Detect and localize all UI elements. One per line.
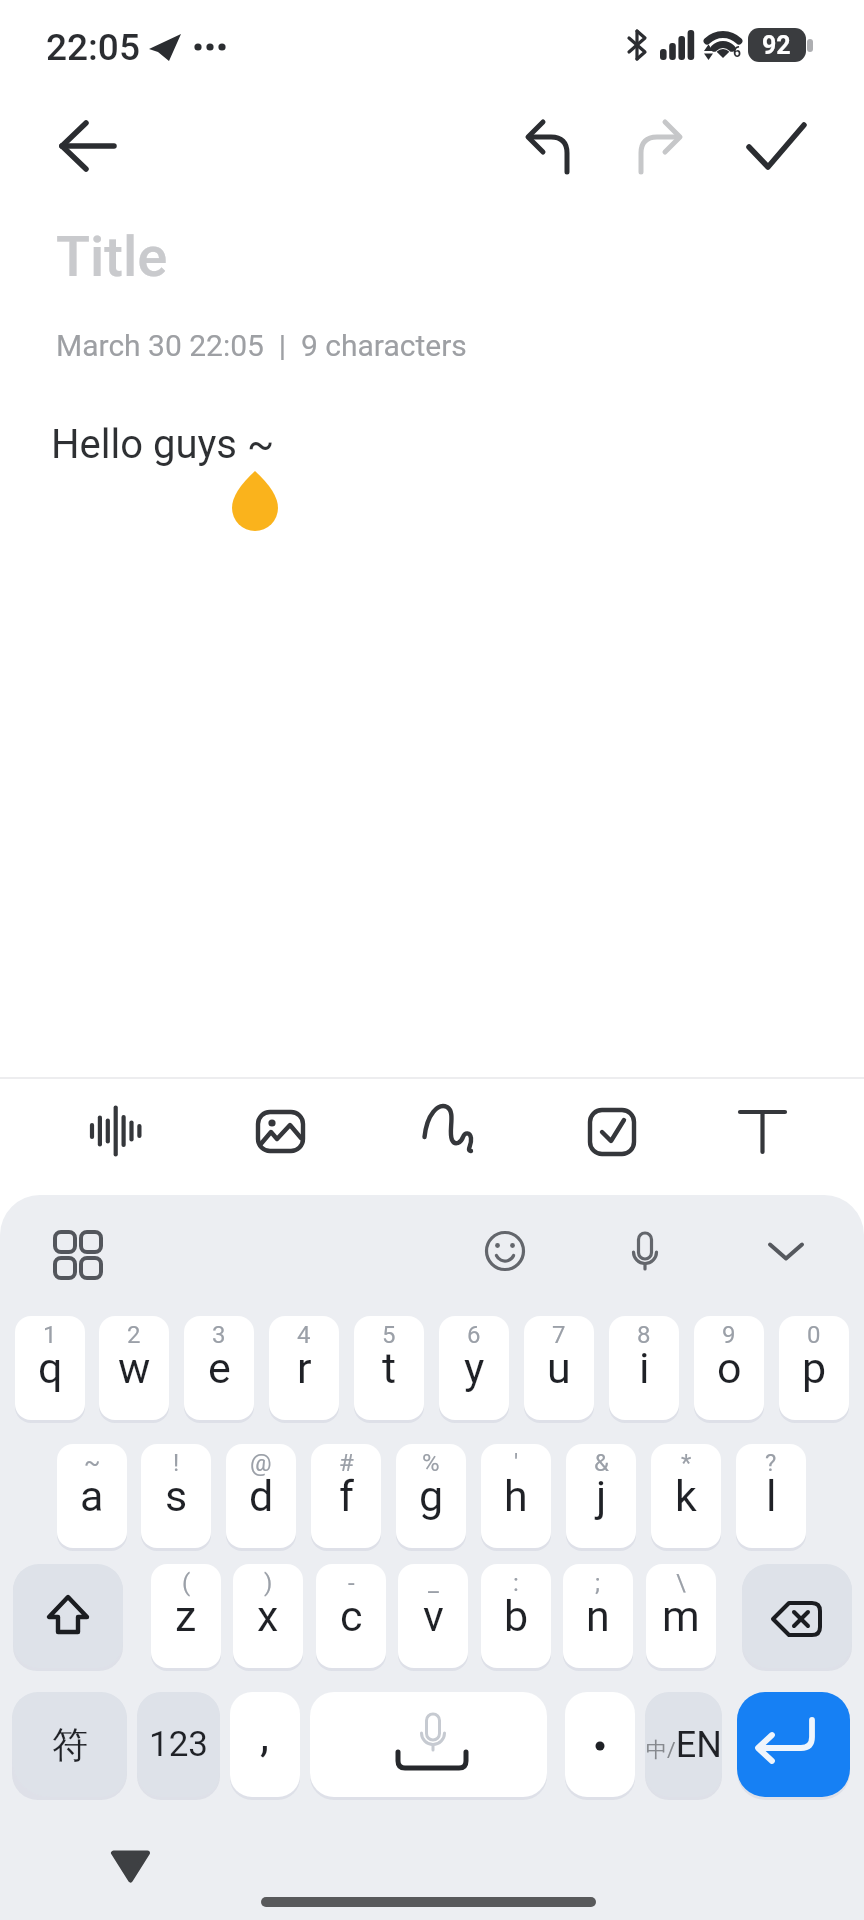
button[interactable]: ( bbox=[151, 1564, 221, 1668]
staticText: * bbox=[681, 1449, 692, 1477]
staticText: , bbox=[260, 1708, 270, 1762]
button[interactable]: 4 bbox=[269, 1316, 339, 1420]
staticText: x bbox=[257, 1591, 279, 1641]
staticText: d bbox=[249, 1471, 274, 1521]
staticText: q bbox=[38, 1343, 63, 1393]
button[interactable]: ? bbox=[736, 1444, 806, 1548]
staticText: t bbox=[382, 1343, 397, 1393]
staticText: Title bbox=[56, 224, 168, 290]
staticText: ) bbox=[264, 1569, 273, 1597]
button[interactable]: 1 bbox=[15, 1316, 85, 1420]
staticText: 3 bbox=[212, 1321, 226, 1349]
staticText: 6 bbox=[733, 44, 742, 60]
button[interactable]: ) bbox=[233, 1564, 303, 1668]
button[interactable] bbox=[609, 1219, 681, 1283]
staticText: March 30 22:05 | 9 characters bbox=[56, 328, 467, 363]
staticText: 92 bbox=[762, 31, 791, 60]
staticText: e bbox=[208, 1343, 231, 1393]
button[interactable]: 8 bbox=[609, 1316, 679, 1420]
button[interactable] bbox=[508, 108, 592, 186]
staticText: @ bbox=[250, 1449, 272, 1477]
button[interactable]: 2 bbox=[99, 1316, 169, 1420]
button[interactable]: 5 bbox=[354, 1316, 424, 1420]
button[interactable] bbox=[44, 108, 130, 186]
staticText: - bbox=[348, 1569, 355, 1597]
staticText: 0 bbox=[807, 1321, 821, 1349]
staticText: & bbox=[594, 1449, 609, 1477]
button[interactable] bbox=[40, 210, 540, 300]
staticText: g bbox=[419, 1471, 444, 1521]
button[interactable]: : bbox=[481, 1564, 551, 1668]
button[interactable]: @ bbox=[226, 1444, 296, 1548]
staticText: 7 bbox=[552, 1321, 566, 1349]
staticText: Hello guys ~ bbox=[51, 421, 275, 468]
staticText: p bbox=[802, 1343, 827, 1393]
staticText: w bbox=[118, 1343, 151, 1393]
button[interactable]: ' bbox=[481, 1444, 551, 1548]
staticText: a bbox=[80, 1471, 104, 1521]
staticText: c bbox=[340, 1591, 363, 1641]
staticText: v bbox=[423, 1591, 444, 1641]
staticText: 22:05 bbox=[46, 26, 140, 69]
staticText: ( bbox=[182, 1569, 191, 1597]
staticText: m bbox=[662, 1591, 700, 1641]
button[interactable]: , bbox=[230, 1692, 300, 1797]
staticText: % bbox=[422, 1449, 440, 1477]
button[interactable]: % bbox=[396, 1444, 466, 1548]
button[interactable]: 123 bbox=[137, 1692, 220, 1797]
staticText: j bbox=[596, 1471, 607, 1521]
button[interactable] bbox=[561, 1090, 645, 1174]
button[interactable]: \ bbox=[646, 1564, 716, 1668]
staticText: u bbox=[547, 1343, 571, 1393]
button[interactable] bbox=[40, 400, 824, 520]
staticText: 123 bbox=[149, 1724, 209, 1765]
button[interactable]: 6 bbox=[439, 1316, 509, 1420]
staticText: k bbox=[675, 1471, 697, 1521]
staticText: 4 bbox=[297, 1321, 311, 1349]
button[interactable] bbox=[750, 1219, 822, 1283]
button[interactable]: ~ bbox=[57, 1444, 127, 1548]
button[interactable]: ; bbox=[563, 1564, 633, 1668]
staticText: 6 bbox=[467, 1321, 481, 1349]
staticText: s bbox=[165, 1471, 188, 1521]
button[interactable]: 3 bbox=[184, 1316, 254, 1420]
button[interactable]: # bbox=[311, 1444, 381, 1548]
button[interactable]: - bbox=[316, 1564, 386, 1668]
button[interactable] bbox=[310, 1692, 547, 1797]
button[interactable]: 0 bbox=[779, 1316, 849, 1420]
staticText: z bbox=[175, 1591, 197, 1641]
button[interactable]: 7 bbox=[524, 1316, 594, 1420]
button[interactable] bbox=[742, 1564, 852, 1668]
button[interactable] bbox=[565, 1692, 635, 1797]
button[interactable]: * bbox=[651, 1444, 721, 1548]
staticText: # bbox=[339, 1449, 354, 1477]
button[interactable]: 中/EN bbox=[645, 1692, 722, 1797]
button[interactable] bbox=[96, 1838, 166, 1896]
button[interactable] bbox=[620, 108, 704, 186]
button[interactable]: 9 bbox=[694, 1316, 764, 1420]
button[interactable] bbox=[723, 1090, 807, 1174]
staticText: 8 bbox=[637, 1321, 651, 1349]
staticText: r bbox=[297, 1343, 312, 1393]
staticText: o bbox=[717, 1343, 742, 1393]
button[interactable] bbox=[42, 1219, 114, 1283]
button[interactable]: 符 bbox=[12, 1692, 127, 1797]
button[interactable]: ! bbox=[141, 1444, 211, 1548]
staticText: y bbox=[464, 1343, 485, 1393]
staticText: b bbox=[504, 1591, 529, 1641]
staticText: \ bbox=[676, 1569, 686, 1597]
button[interactable] bbox=[237, 1090, 321, 1174]
button[interactable] bbox=[732, 108, 816, 186]
button[interactable] bbox=[737, 1692, 850, 1797]
button[interactable]: & bbox=[566, 1444, 636, 1548]
button[interactable]: _ bbox=[398, 1564, 468, 1668]
staticText: i bbox=[639, 1343, 650, 1393]
staticText: 1 bbox=[43, 1321, 57, 1349]
button[interactable] bbox=[469, 1219, 541, 1283]
staticText: h bbox=[504, 1471, 528, 1521]
button[interactable] bbox=[399, 1090, 483, 1174]
button[interactable] bbox=[13, 1564, 123, 1668]
staticText: ? bbox=[765, 1449, 777, 1477]
staticText: _ bbox=[428, 1569, 439, 1597]
button[interactable] bbox=[75, 1090, 159, 1174]
